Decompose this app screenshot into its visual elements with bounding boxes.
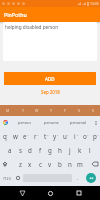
staticText: w: [13, 132, 18, 140]
staticText: person: [18, 120, 31, 125]
button[interactable]: r: [30, 129, 40, 143]
button[interactable]: n: [65, 157, 75, 171]
button[interactable]: h: [55, 143, 65, 157]
button[interactable]: f: [35, 143, 45, 157]
button[interactable]: g: [45, 143, 55, 157]
staticText: i: [74, 132, 76, 140]
staticText: W: [35, 108, 39, 113]
button[interactable]: Shift: [0, 157, 10, 171]
button[interactable]: i: [70, 129, 80, 143]
staticText: T: [22, 108, 24, 113]
staticText: d: [28, 146, 32, 154]
button[interactable]: v: [45, 157, 55, 171]
button[interactable]: x: [25, 157, 35, 171]
staticText: h: [58, 146, 62, 154]
button[interactable]: s: [15, 143, 25, 157]
button[interactable]: w: [10, 129, 20, 143]
staticText: r: [34, 132, 37, 140]
staticText: v: [48, 160, 52, 168]
staticText: m: [77, 160, 83, 168]
staticText: Sep 2018: [41, 89, 60, 95]
staticText: t: [44, 132, 47, 140]
button[interactable]: l: [85, 143, 95, 157]
button[interactable]: y: [50, 129, 60, 143]
staticText: 1: [7, 133, 9, 136]
staticText: o: [83, 132, 87, 140]
staticText: persons: [44, 120, 59, 125]
staticText: a: [8, 146, 12, 154]
button[interactable]: o: [80, 129, 90, 143]
button[interactable]: personal: [65, 116, 92, 129]
button[interactable]: persons: [38, 116, 65, 129]
staticText: S: [92, 108, 94, 113]
staticText: y: [53, 132, 57, 140]
button[interactable]: p: [90, 129, 100, 143]
staticText: z: [19, 160, 22, 168]
button[interactable]: Emoji: [14, 171, 22, 185]
staticText: f: [39, 146, 42, 154]
button[interactable]: ?123: [0, 171, 14, 185]
button[interactable]: Home: [43, 186, 57, 200]
button[interactable]: c: [35, 157, 45, 171]
staticText: k: [78, 146, 82, 154]
staticText: 7: [67, 133, 69, 136]
staticText: 4: [37, 133, 39, 136]
button[interactable]: Backspace: [90, 157, 100, 171]
staticText: S: [78, 108, 80, 113]
staticText: b: [58, 160, 62, 168]
button[interactable]: u: [60, 129, 70, 143]
button[interactable]: Enter: [82, 171, 100, 185]
button[interactable]: person: [10, 116, 38, 129]
staticText: M: [6, 108, 10, 113]
staticText: q: [3, 132, 7, 140]
staticText: c: [39, 160, 42, 168]
button[interactable]: More suggestions: [92, 116, 100, 129]
button[interactable]: Recents: [72, 186, 86, 200]
staticText: ?123: [3, 176, 11, 181]
staticText: 9: [87, 133, 89, 136]
staticText: j: [69, 146, 71, 154]
staticText: u: [63, 132, 67, 140]
staticText: g: [48, 146, 52, 154]
button[interactable]: .: [73, 171, 82, 185]
button[interactable]: Back: [15, 186, 29, 200]
staticText: s: [19, 146, 22, 154]
staticText: 3: [27, 133, 29, 136]
staticText: 12:05: [90, 1, 99, 6]
staticText: 6: [57, 133, 59, 136]
staticText: F: [64, 108, 66, 113]
staticText: T: [50, 108, 52, 113]
button[interactable]: z: [15, 157, 25, 171]
staticText: helping disabled person: [5, 24, 59, 30]
button[interactable]: a: [5, 143, 15, 157]
button[interactable]: t: [40, 129, 50, 143]
staticText: ADD: [45, 76, 55, 82]
button[interactable]: helping disabled person: [3, 22, 97, 61]
staticText: 8: [77, 133, 79, 136]
staticText: e: [23, 132, 27, 140]
button[interactable]: b: [55, 157, 65, 171]
staticText: 5: [47, 133, 49, 136]
button[interactable]: ADD: [4, 72, 96, 85]
button[interactable]: e: [20, 129, 30, 143]
staticText: .: [77, 175, 79, 182]
staticText: l: [89, 146, 91, 154]
button[interactable]: j: [65, 143, 75, 157]
staticText: x: [28, 160, 32, 168]
button[interactable]: k: [75, 143, 85, 157]
staticText: p: [93, 132, 97, 140]
staticText: personal: [70, 120, 87, 125]
button[interactable]: m: [75, 157, 85, 171]
button[interactable]: q: [0, 129, 10, 143]
staticText: PinPothu: [4, 11, 27, 18]
staticText: 2: [17, 133, 19, 136]
button[interactable]: d: [25, 143, 35, 157]
staticText: 0: [97, 133, 99, 136]
staticText: n: [68, 160, 72, 168]
button[interactable]: Google: [0, 116, 10, 129]
